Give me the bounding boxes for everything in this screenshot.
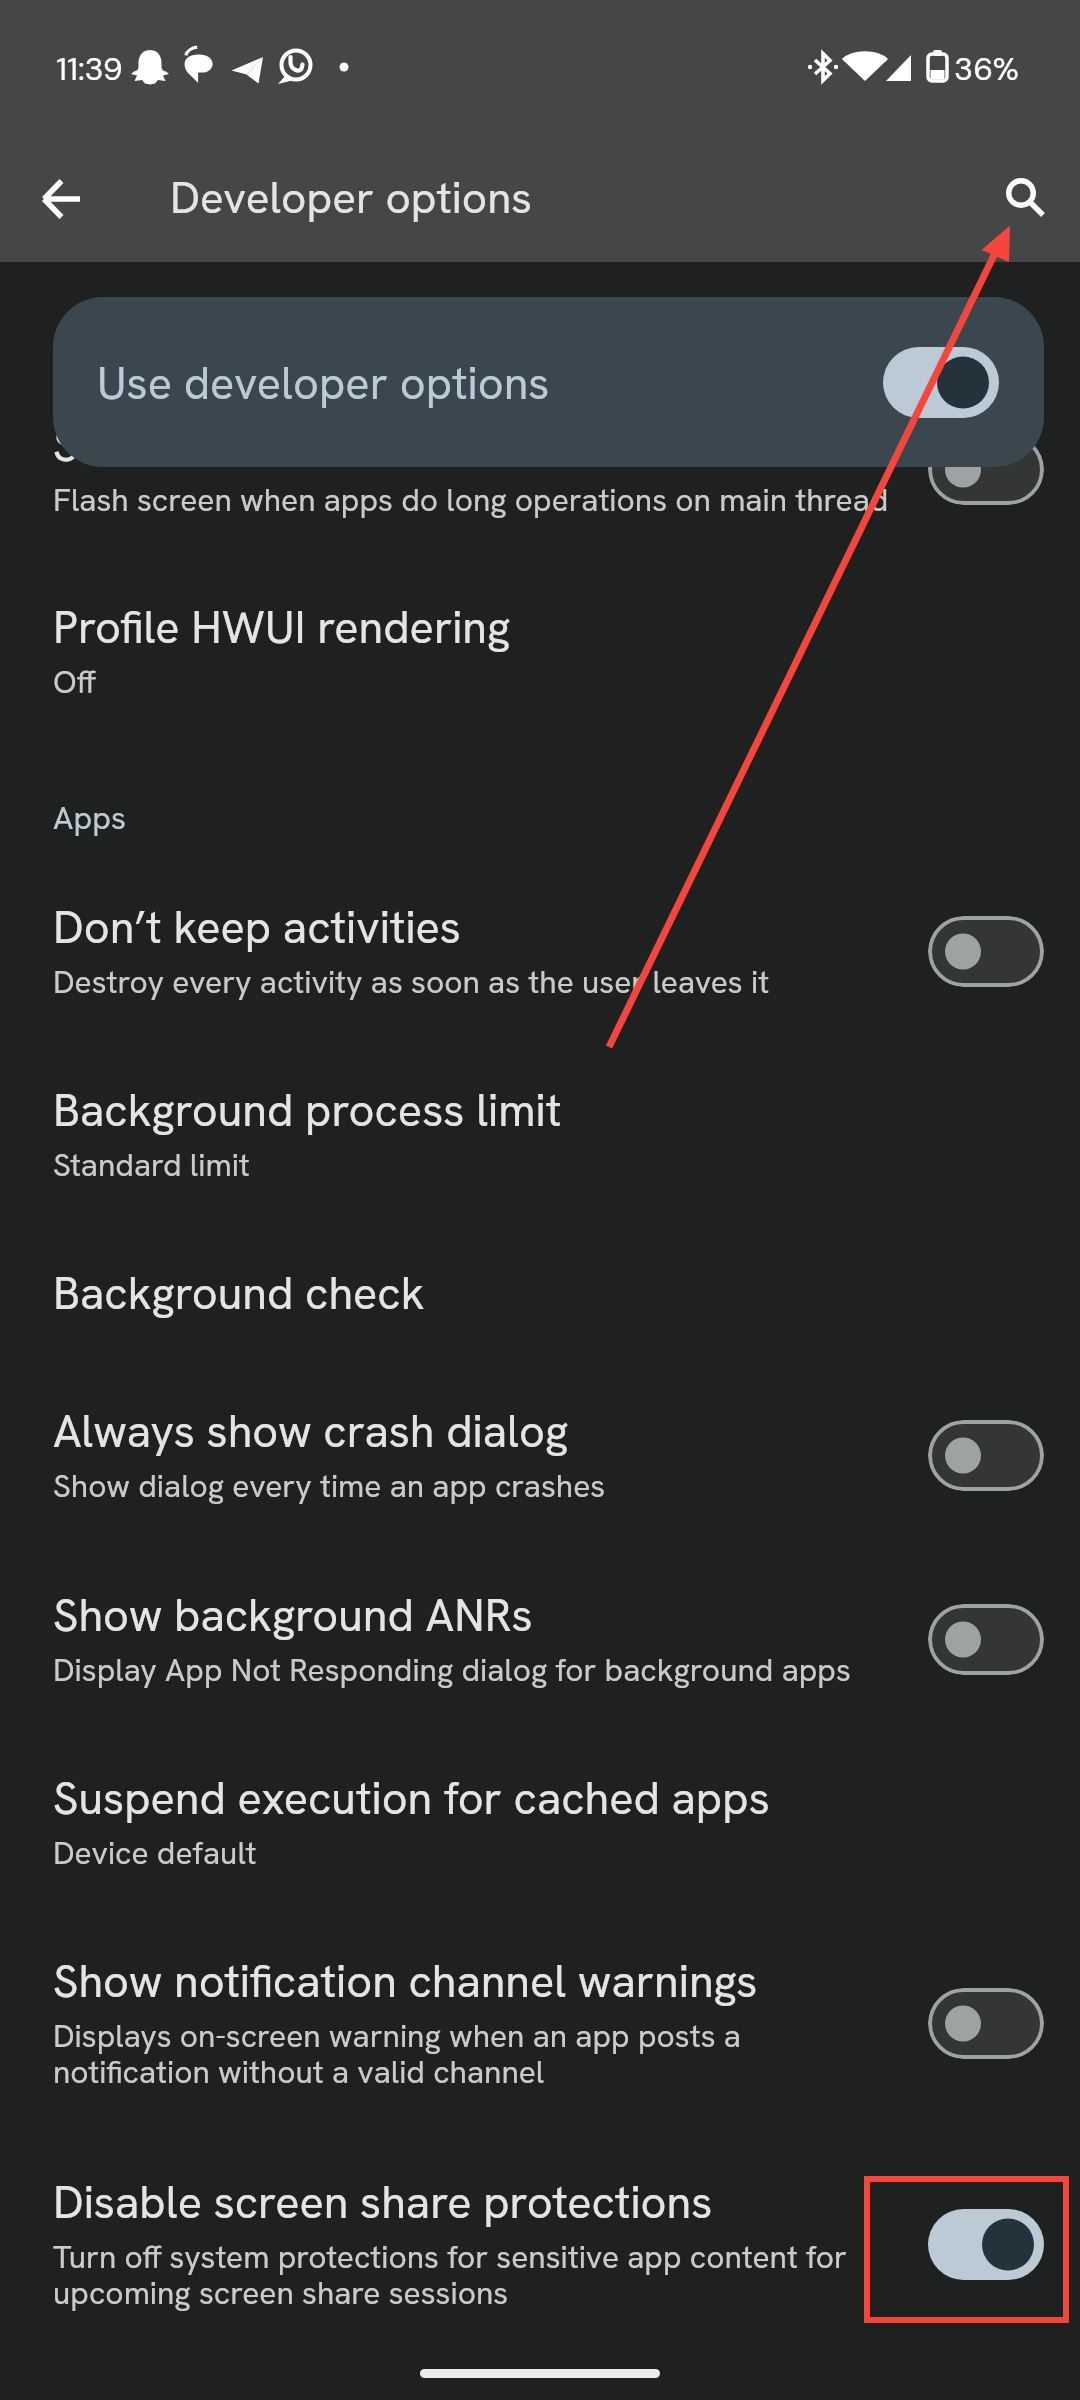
button[interactable]: Strict mode enabled xyxy=(0,386,1080,559)
staticText: Suspend execution for cached apps xyxy=(53,1769,770,1828)
button[interactable]: Disable screen share protections xyxy=(0,2143,1080,2352)
staticText: Don’t keep activities xyxy=(53,898,462,957)
staticText: 36% xyxy=(954,48,1019,90)
button[interactable]: Search xyxy=(977,148,1065,236)
staticText: notification without a valid channel xyxy=(53,2051,545,2092)
staticText: Background process limit xyxy=(53,1081,562,1140)
staticText: Device default xyxy=(53,1832,257,1873)
staticText: Displays on-screen warning when an app p… xyxy=(53,2015,741,2056)
button[interactable]: Use developer options xyxy=(53,297,1044,467)
staticText: 11:39 xyxy=(56,48,123,90)
staticText: Off xyxy=(53,661,96,702)
staticText: Developer options xyxy=(170,169,532,226)
button[interactable]: Background process limit xyxy=(0,1051,1080,1224)
staticText: Display App Not Responding dialog for ba… xyxy=(53,1649,851,1690)
staticText: Flash screen when apps do long operation… xyxy=(53,479,889,520)
button[interactable]: Suspend execution for cached apps xyxy=(0,1739,1080,1912)
button[interactable] xyxy=(928,1604,1044,1675)
staticText: Profile HWUI rendering xyxy=(53,598,511,657)
staticText: Destroy every activity as soon as the us… xyxy=(53,961,770,1002)
staticText: Turn off system protections for sensitiv… xyxy=(53,2236,847,2277)
button[interactable] xyxy=(928,916,1044,987)
staticText: Disable screen share protections xyxy=(53,2173,713,2232)
staticText: Show notification channel warnings xyxy=(53,1952,758,2011)
button[interactable] xyxy=(928,2209,1044,2280)
staticText: Background check xyxy=(53,1264,425,1323)
button[interactable]: Always show crash dialog xyxy=(0,1372,1080,1545)
staticText: Use developer options xyxy=(97,354,550,413)
button[interactable] xyxy=(928,1420,1044,1491)
staticText: Standard limit xyxy=(53,1144,250,1185)
button[interactable]: Show notification channel warnings xyxy=(0,1922,1080,2131)
button[interactable]: Don’t keep activities xyxy=(0,868,1080,1041)
staticText: Strict mode enabled xyxy=(53,416,460,475)
staticText: Show background ANRs xyxy=(53,1586,533,1645)
button[interactable] xyxy=(928,434,1044,505)
button[interactable] xyxy=(928,1988,1044,2059)
button[interactable] xyxy=(883,347,999,418)
button[interactable]: Back xyxy=(18,154,106,242)
staticText: Show dialog every time an app crashes xyxy=(53,1465,606,1506)
button[interactable]: Profile HWUI rendering xyxy=(0,568,1080,741)
staticText: Apps xyxy=(53,797,126,839)
button[interactable]: Show background ANRs xyxy=(0,1556,1080,1729)
staticText: upcoming screen share sessions xyxy=(53,2272,509,2313)
button[interactable]: Background check xyxy=(0,1234,1080,1356)
staticText: Always show crash dialog xyxy=(53,1402,569,1461)
